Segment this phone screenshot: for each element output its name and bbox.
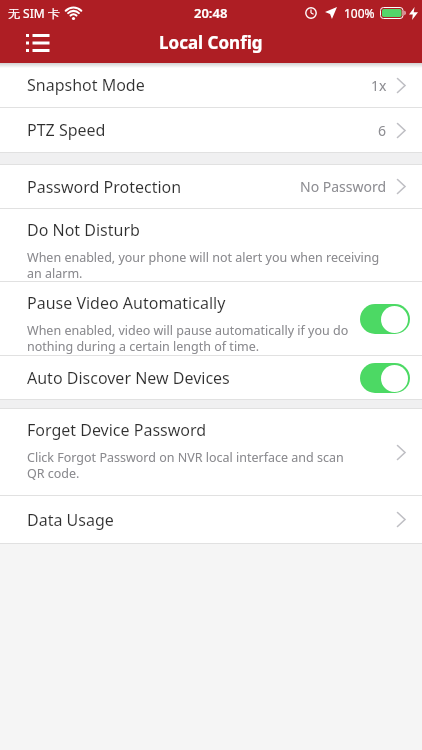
staticText: Do Not Disturb [27, 219, 140, 241]
staticText: Password Protection [27, 176, 182, 198]
staticText: 100% [344, 5, 375, 21]
button[interactable]: Do Not Disturb [0, 209, 422, 281]
staticText: Snapshot Mode [27, 74, 145, 96]
staticText: When enabled, your phone will not alert … [27, 249, 380, 281]
button[interactable]: Pause Video Automatically [0, 282, 422, 355]
staticText: Pause Video Automatically [27, 292, 226, 314]
staticText: Data Usage [27, 509, 114, 531]
staticText: No Password [300, 177, 387, 196]
button[interactable] [18, 25, 58, 63]
staticText: Local Config [159, 31, 263, 54]
button[interactable]: Snapshot Mode [0, 63, 422, 107]
staticText: When enabled, video will pause automatic… [27, 322, 349, 355]
staticText: Forget Device Password [27, 419, 207, 441]
staticText: 6 [378, 121, 387, 140]
button[interactable] [360, 304, 410, 334]
staticText: PTZ Speed [27, 119, 106, 141]
button[interactable] [360, 363, 410, 393]
staticText: 无 SIM 卡 [8, 5, 60, 21]
button[interactable]: Password Protection [0, 165, 422, 208]
button[interactable]: Forget Device Password [0, 409, 422, 495]
button[interactable]: Data Usage [0, 496, 422, 543]
button[interactable]: Auto Discover New Devices [0, 356, 422, 399]
staticText: 20:48 [194, 4, 228, 22]
button[interactable]: PTZ Speed [0, 108, 422, 152]
staticText: Auto Discover New Devices [27, 367, 230, 389]
staticText: 1x [371, 76, 387, 95]
staticText: Click Forgot Password on NVR local inter… [27, 449, 344, 482]
